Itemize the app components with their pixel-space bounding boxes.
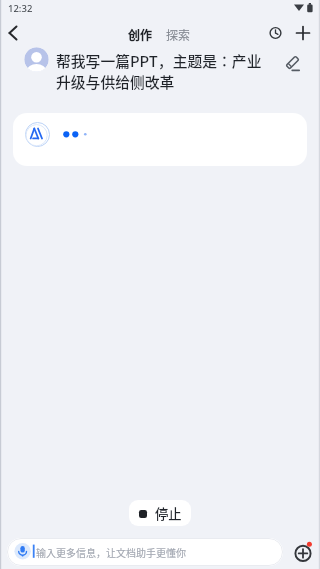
button[interactable]: 停止 (129, 500, 191, 526)
button[interactable] (291, 541, 316, 566)
staticText: 帮我写一篇PPT，主题是：产业 升级与供给侧改革 (56, 50, 291, 92)
staticText: 探索 (166, 26, 191, 43)
button[interactable] (282, 53, 302, 73)
button[interactable] (264, 22, 287, 45)
staticText: 12:32 (8, 2, 33, 15)
button[interactable] (13, 113, 307, 166)
button[interactable] (2, 22, 26, 46)
button[interactable]: 输入更多信息，让文档助手更懂你 (7, 538, 283, 566)
staticText: 停止 (155, 504, 182, 523)
button[interactable]: 探索 (164, 24, 193, 45)
button[interactable]: 创作 (126, 24, 155, 45)
staticText: 输入更多信息，让文档助手更懂你 (36, 545, 186, 559)
button[interactable] (292, 22, 314, 44)
staticText: 创作 (128, 26, 153, 43)
